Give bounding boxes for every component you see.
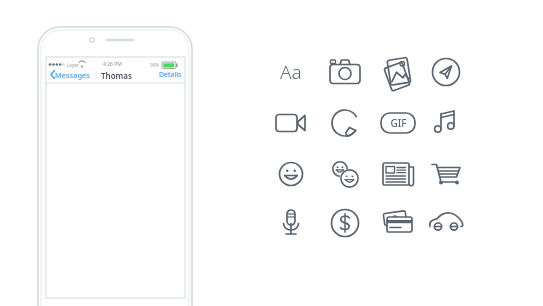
button[interactable]: Video <box>272 104 310 142</box>
staticText: 98% <box>150 62 159 68</box>
button[interactable]: Ride <box>427 204 465 242</box>
button[interactable]: News <box>379 155 417 193</box>
button[interactable]: Shopping <box>427 155 465 193</box>
button[interactable]: GIF <box>379 104 417 142</box>
button[interactable]: Payments <box>326 204 364 242</box>
staticText: Aa <box>280 59 302 85</box>
button[interactable]: Music <box>427 104 465 142</box>
staticText: GIF <box>390 116 407 130</box>
button[interactable]: Details <box>156 68 184 82</box>
button[interactable]: Voice message <box>272 204 310 242</box>
button[interactable]: Send <box>427 53 465 91</box>
button[interactable]: Text style <box>272 53 310 91</box>
button[interactable]: Reactions <box>326 155 364 193</box>
staticText: Details <box>159 70 182 80</box>
button[interactable]: Messages <box>46 68 91 82</box>
button[interactable]: Wallet <box>379 204 417 242</box>
button[interactable]: Emoji <box>272 155 310 193</box>
staticText: Messages <box>55 70 90 80</box>
button[interactable]: Camera <box>326 53 364 91</box>
button[interactable]: Photos <box>379 53 417 91</box>
staticText: 4:26 PM <box>103 61 122 68</box>
staticText: Layer <box>67 62 79 68</box>
button[interactable]: Stickers <box>326 104 364 142</box>
staticText: Thomas <box>101 70 132 81</box>
